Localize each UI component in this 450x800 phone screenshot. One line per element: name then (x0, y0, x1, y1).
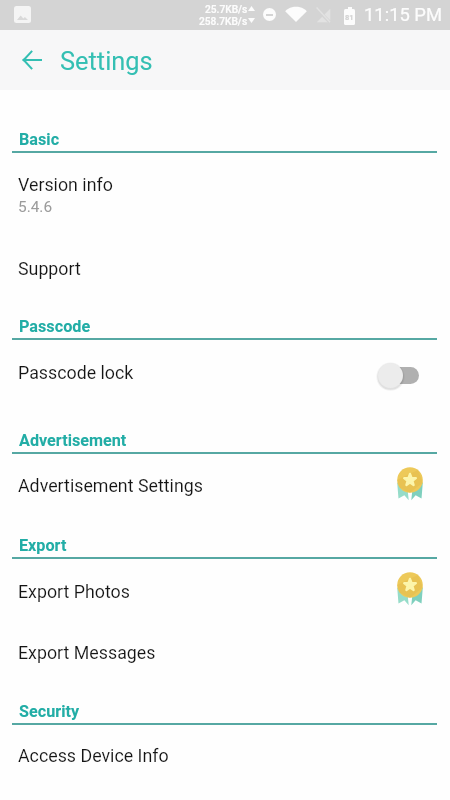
staticText: Passcode (19, 317, 91, 336)
staticText: Advertisement Settings (18, 475, 203, 496)
other: Premium (395, 466, 425, 502)
staticText: 25.7KB/s (205, 4, 248, 16)
button[interactable]: Back (8, 38, 53, 83)
button[interactable]: Export Messages (0, 628, 450, 684)
staticText: Export Messages (18, 642, 156, 663)
button[interactable]: Access Device Info (0, 732, 450, 788)
staticText: Export Photos (18, 581, 130, 602)
button[interactable]: Passcode lock toggle (370, 353, 428, 397)
staticText: Support (18, 258, 81, 279)
button[interactable]: Passcode lock (0, 348, 450, 404)
staticText: Access Device Info (18, 745, 169, 766)
button[interactable]: Version info (0, 160, 450, 230)
button[interactable]: Support (0, 240, 450, 296)
staticText: Passcode lock (18, 362, 134, 383)
staticText: Settings (60, 46, 153, 76)
button[interactable]: Export Photos (0, 567, 450, 623)
staticText: Export (19, 536, 67, 555)
staticText: Advertisement (19, 431, 127, 450)
staticText: 11:15 PM (364, 4, 443, 26)
staticText: 81 (345, 13, 354, 22)
button[interactable]: Advertisement Settings (0, 462, 450, 518)
other: Premium (395, 571, 425, 607)
staticText: Basic (19, 130, 60, 149)
staticText: Version info (18, 174, 113, 195)
staticText: 5.4.6 (18, 198, 53, 216)
staticText: 258.7KB/s (199, 16, 248, 28)
staticText: Security (19, 702, 80, 721)
